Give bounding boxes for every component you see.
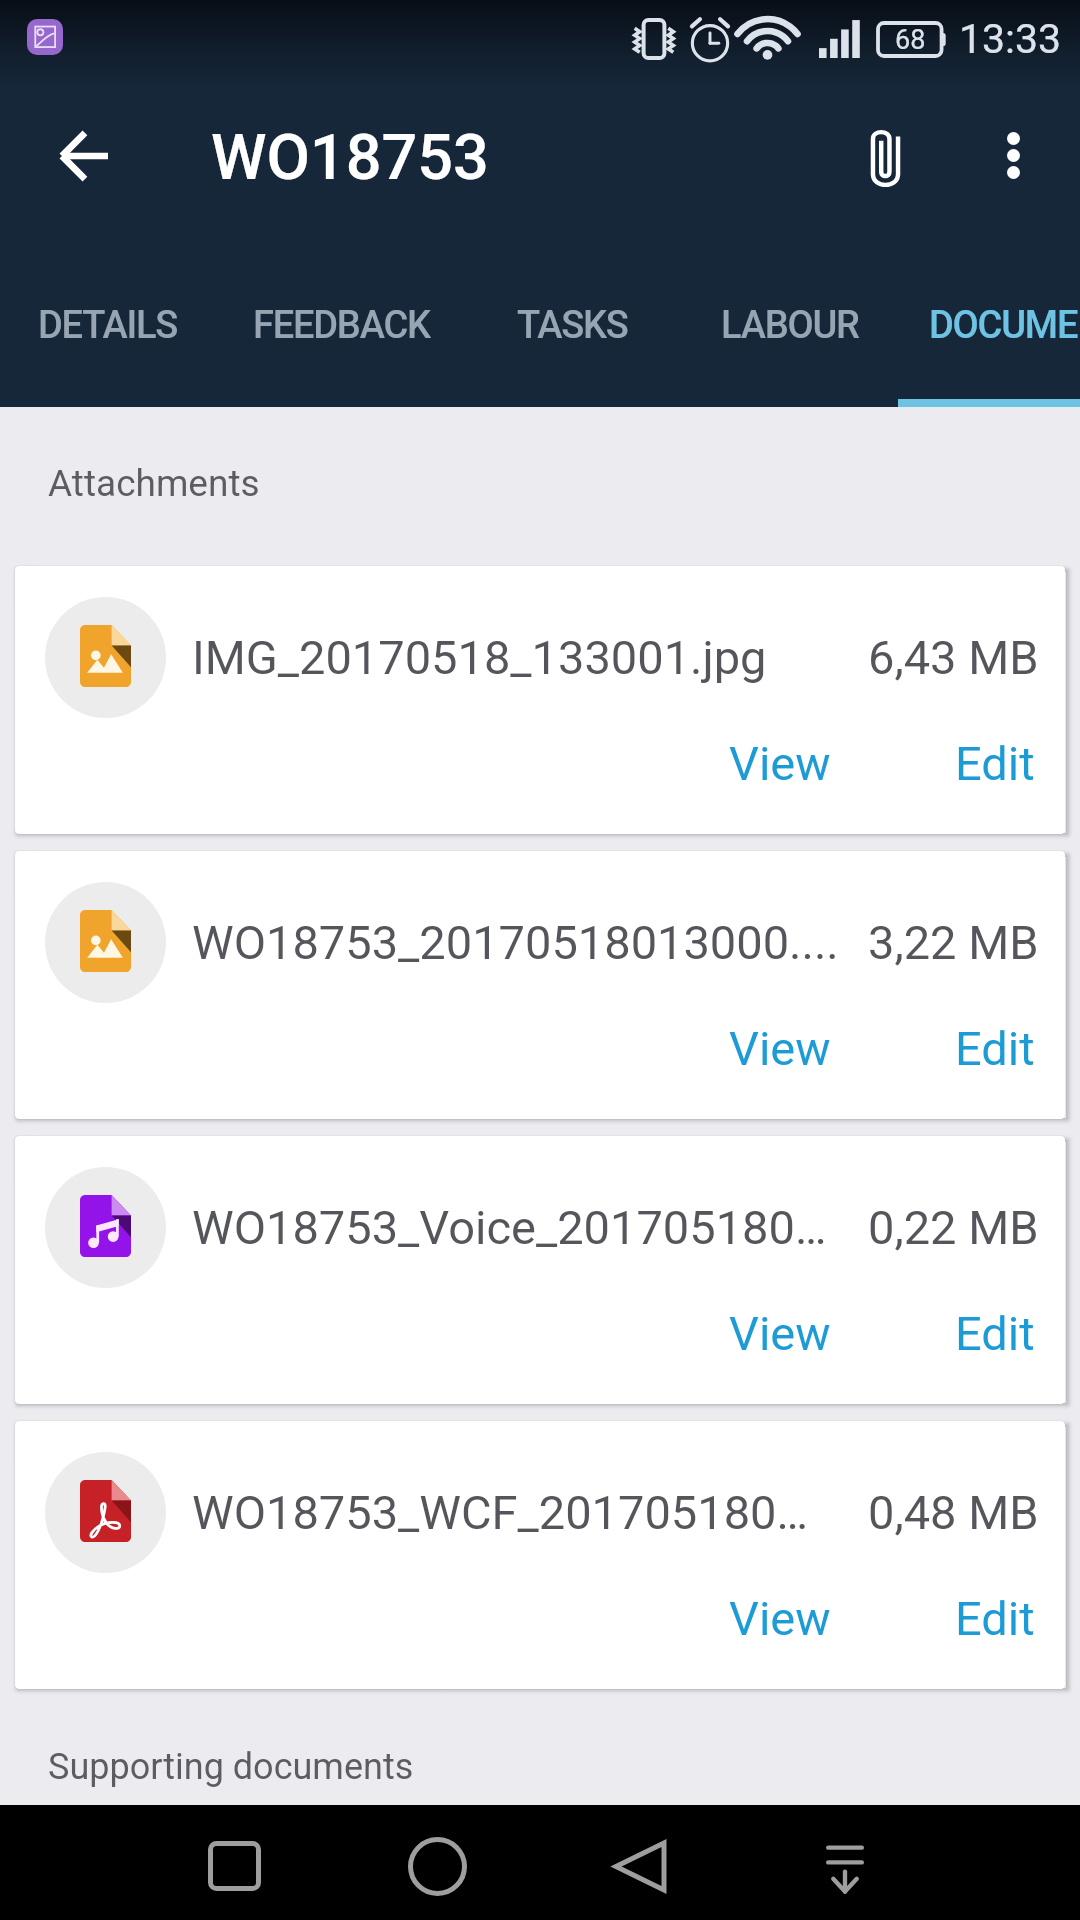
- button[interactable]: Edit: [933, 1009, 1057, 1088]
- button[interactable]: View: [707, 724, 853, 803]
- staticText: WO18753_20170518013000....: [192, 915, 856, 970]
- staticText: Attachments: [48, 462, 260, 505]
- staticText: Edit: [955, 1021, 1035, 1076]
- button[interactable]: Hide navigation bar: [790, 1805, 900, 1915]
- button[interactable]: Edit: [933, 1579, 1057, 1658]
- staticText: 68: [895, 24, 926, 56]
- button[interactable]: DETAILS: [0, 264, 216, 386]
- button[interactable]: Edit: [933, 1294, 1057, 1373]
- staticText: WO18753: [211, 121, 489, 195]
- button[interactable]: Back: [585, 1805, 695, 1915]
- button[interactable]: IMG_20170518_133001.jpg: [15, 566, 1065, 834]
- button[interactable]: WO18753_20170518013000....: [15, 851, 1065, 1119]
- button[interactable]: LABOUR: [678, 264, 902, 386]
- button[interactable]: View: [707, 1294, 853, 1373]
- staticText: Edit: [955, 1306, 1035, 1361]
- button[interactable]: FEEDBACK: [216, 264, 466, 386]
- button[interactable]: Home: [382, 1805, 492, 1915]
- staticText: 3,22 MB: [868, 915, 1039, 970]
- staticText: View: [729, 1591, 831, 1646]
- staticText: DETAILS: [38, 303, 178, 348]
- staticText: IMG_20170518_133001.jpg: [192, 630, 856, 685]
- staticText: Edit: [955, 736, 1035, 791]
- staticText: TASKS: [517, 303, 628, 348]
- staticText: View: [729, 736, 831, 791]
- button[interactable]: More options: [949, 94, 1077, 222]
- staticText: LABOUR: [721, 303, 859, 348]
- button[interactable]: View: [707, 1009, 853, 1088]
- button[interactable]: View: [707, 1579, 853, 1658]
- staticText: FEEDBACK: [253, 303, 430, 348]
- staticText: 0,22 MB: [868, 1200, 1039, 1255]
- button[interactable]: Attach: [821, 94, 949, 222]
- staticText: 0,48 MB: [868, 1485, 1039, 1540]
- button[interactable]: Recents: [179, 1805, 289, 1915]
- button[interactable]: TASKS: [466, 264, 678, 386]
- staticText: WO18753_Voice_201705180…: [192, 1200, 856, 1255]
- staticText: Edit: [955, 1591, 1035, 1646]
- staticText: DOCUMENTS: [929, 303, 1080, 348]
- staticText: View: [729, 1021, 831, 1076]
- button[interactable]: Back: [20, 94, 148, 222]
- staticText: 13:33: [959, 15, 1062, 63]
- button[interactable]: DOCUMENTS: [902, 264, 1080, 386]
- button[interactable]: WO18753_WCF_201705180…: [15, 1421, 1065, 1689]
- button[interactable]: WO18753_Voice_201705180…: [15, 1136, 1065, 1404]
- staticText: 6,43 MB: [868, 630, 1039, 685]
- staticText: Supporting documents: [48, 1746, 414, 1788]
- staticText: View: [729, 1306, 831, 1361]
- button[interactable]: Edit: [933, 724, 1057, 803]
- staticText: WO18753_WCF_201705180…: [192, 1485, 856, 1540]
